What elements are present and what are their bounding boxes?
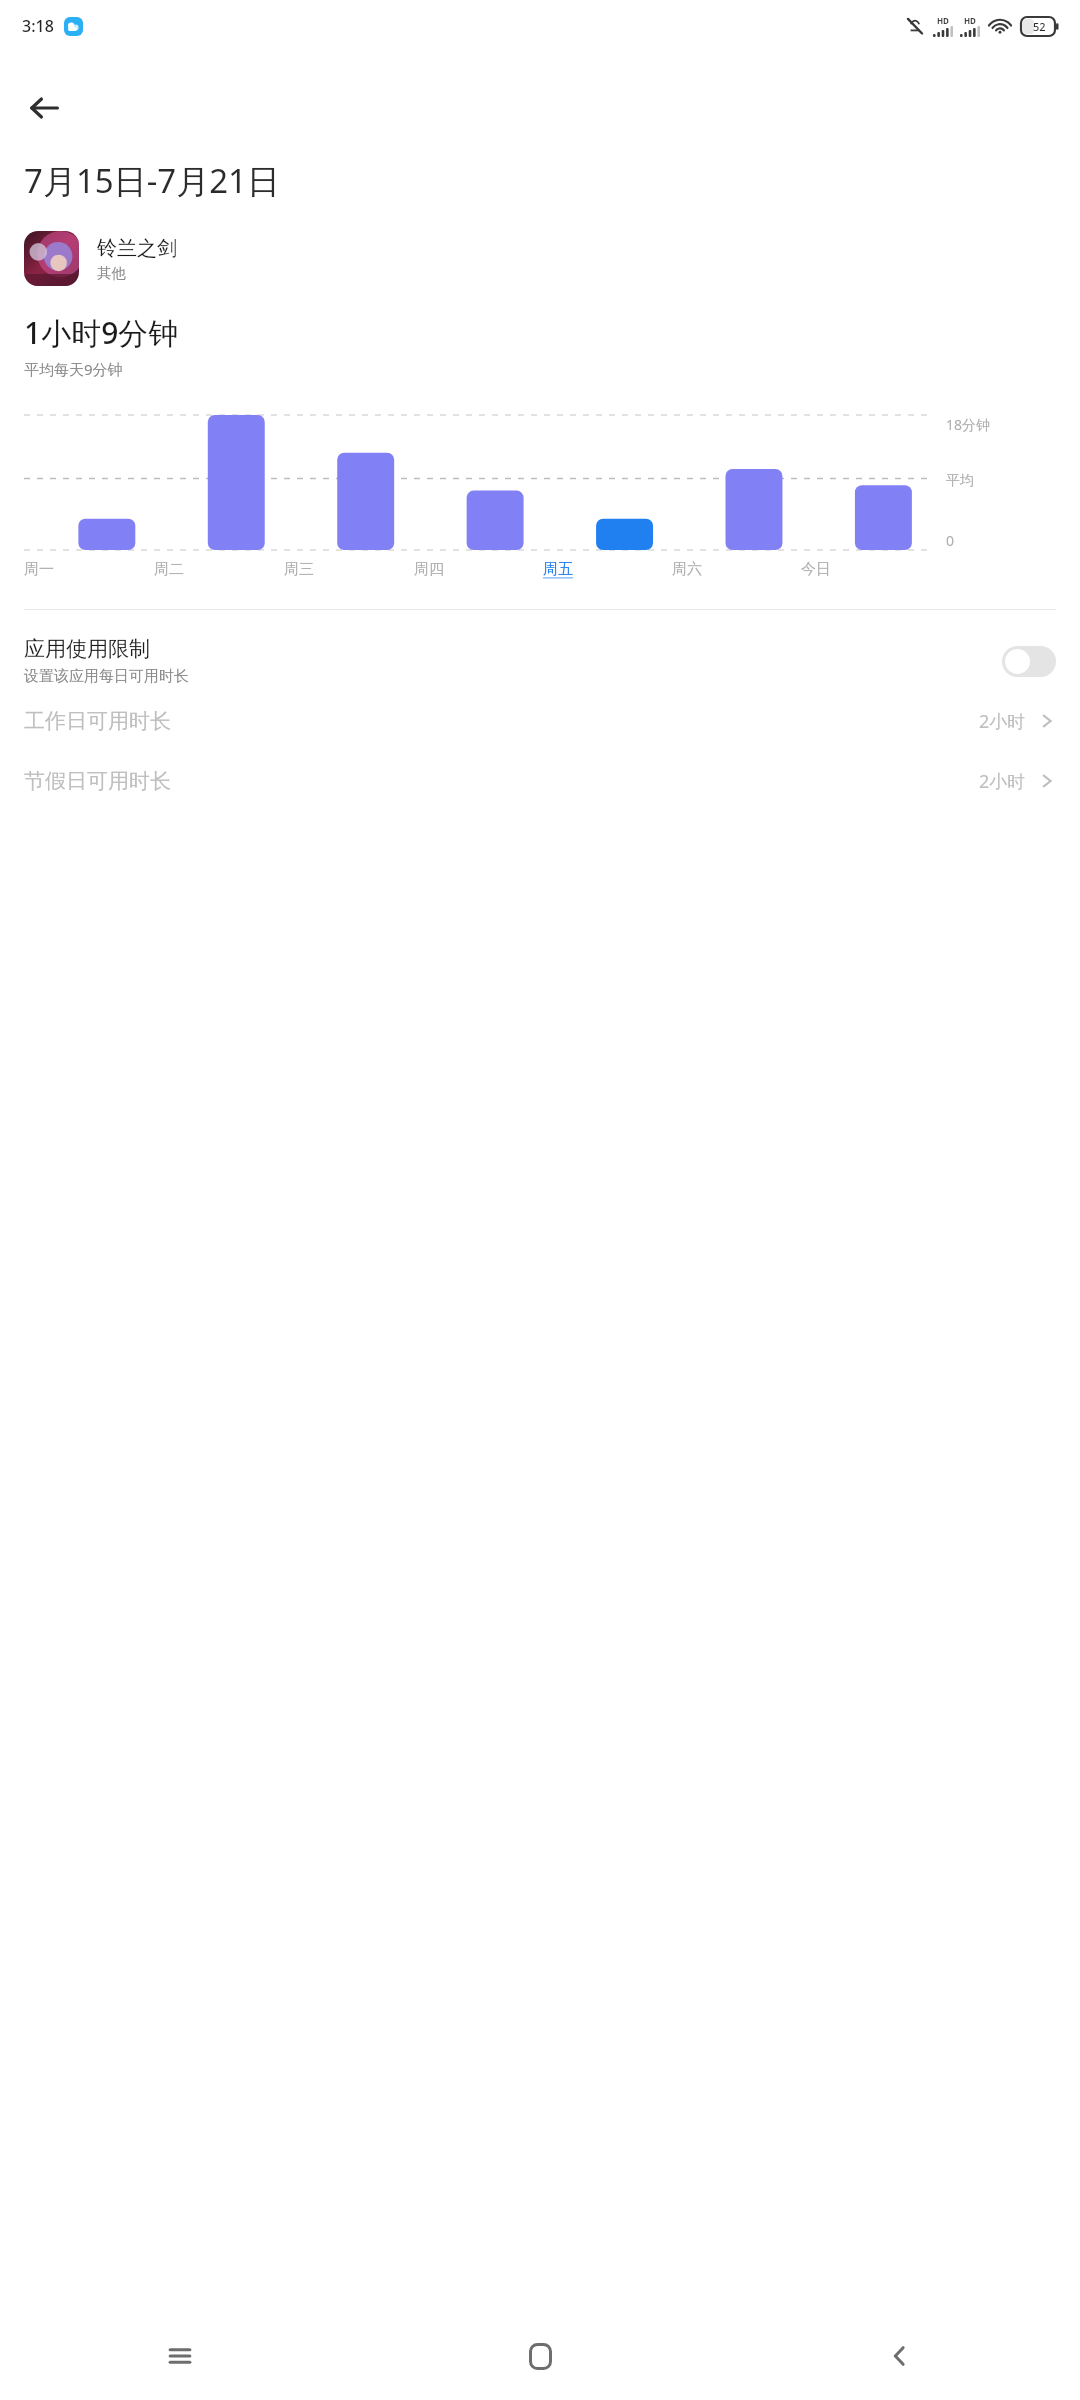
button[interactable]: 周三 [284,560,314,579]
staticText: 设置该应用每日可用时长 [24,667,189,686]
staticText: 18分钟 [946,415,991,434]
staticText: 平均 [946,472,974,490]
button[interactable]: 周一 [24,560,54,579]
staticText: HD [964,15,976,26]
button[interactable]: 周二 [154,560,184,579]
staticText: 平均每天9分钟 [24,359,123,379]
button[interactable]: 周六 [672,560,702,579]
staticText: 工作日可用时长 [24,708,979,734]
button[interactable]: Back [12,76,76,140]
button[interactable]: Back [720,2312,1080,2400]
button[interactable]: 铃兰之剑 [0,231,1080,286]
staticText: 应用使用限制 [24,636,150,662]
button[interactable]: App usage limit toggle [1002,646,1056,677]
button[interactable]: 节假日可用时长 [0,768,1080,794]
staticText: 铃兰之剑 [97,236,177,261]
button[interactable]: 周四 [414,560,444,579]
staticText: 3:18 [22,15,54,37]
button[interactable]: 工作日可用时长 [0,708,1080,734]
button[interactable]: Recents [0,2312,360,2400]
button[interactable]: 周五 [543,560,573,579]
staticText: 7月15日-7月21日 [24,158,280,203]
staticText: 52 [1033,19,1046,34]
staticText: 2小时 [979,709,1026,734]
staticText: 其他 [97,264,126,282]
staticText: 节假日可用时长 [24,768,979,794]
staticText: HD [937,15,949,26]
button[interactable]: Home [360,2312,720,2400]
button[interactable]: 今日 [801,560,831,579]
button[interactable]: 应用使用限制 [0,636,1080,686]
staticText: 1小时9分钟 [24,312,179,353]
staticText: 2小时 [979,769,1026,794]
staticText: 0 [946,531,955,550]
